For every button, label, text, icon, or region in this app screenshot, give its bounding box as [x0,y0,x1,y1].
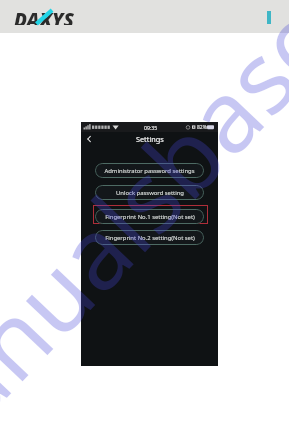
staticText: 09:35 [144,124,158,131]
button[interactable]: Administrator password settings [95,163,204,178]
button[interactable]: Fingerprint No.2 setting(Not set) [95,230,204,245]
button[interactable]: Fingerprint No.1 setting(Not set) [95,209,204,224]
staticText: Administrator password settings [104,167,195,175]
button[interactable]: Unlock password setting [95,185,204,200]
staticText: Unlock password setting [116,189,184,197]
staticText: Fingerprint No.1 setting(Not set) [105,213,195,221]
staticText: 82% [197,124,207,131]
staticText: DAXYS [14,7,74,25]
staticText: Fingerprint No.2 setting(Not set) [105,234,195,242]
staticText: Settings [136,134,164,144]
button[interactable]: Back [86,135,92,143]
